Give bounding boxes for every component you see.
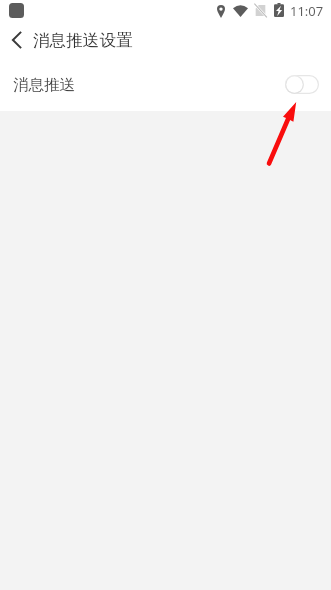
staticText: 消息推送 <box>13 75 75 95</box>
staticText: 消息推送设置 <box>33 30 133 51</box>
staticText: 11:07 <box>290 2 324 20</box>
button[interactable]: Back <box>0 22 34 58</box>
button[interactable]: 消息推送 <box>0 58 331 111</box>
button[interactable]: Toggle message push <box>285 75 319 94</box>
